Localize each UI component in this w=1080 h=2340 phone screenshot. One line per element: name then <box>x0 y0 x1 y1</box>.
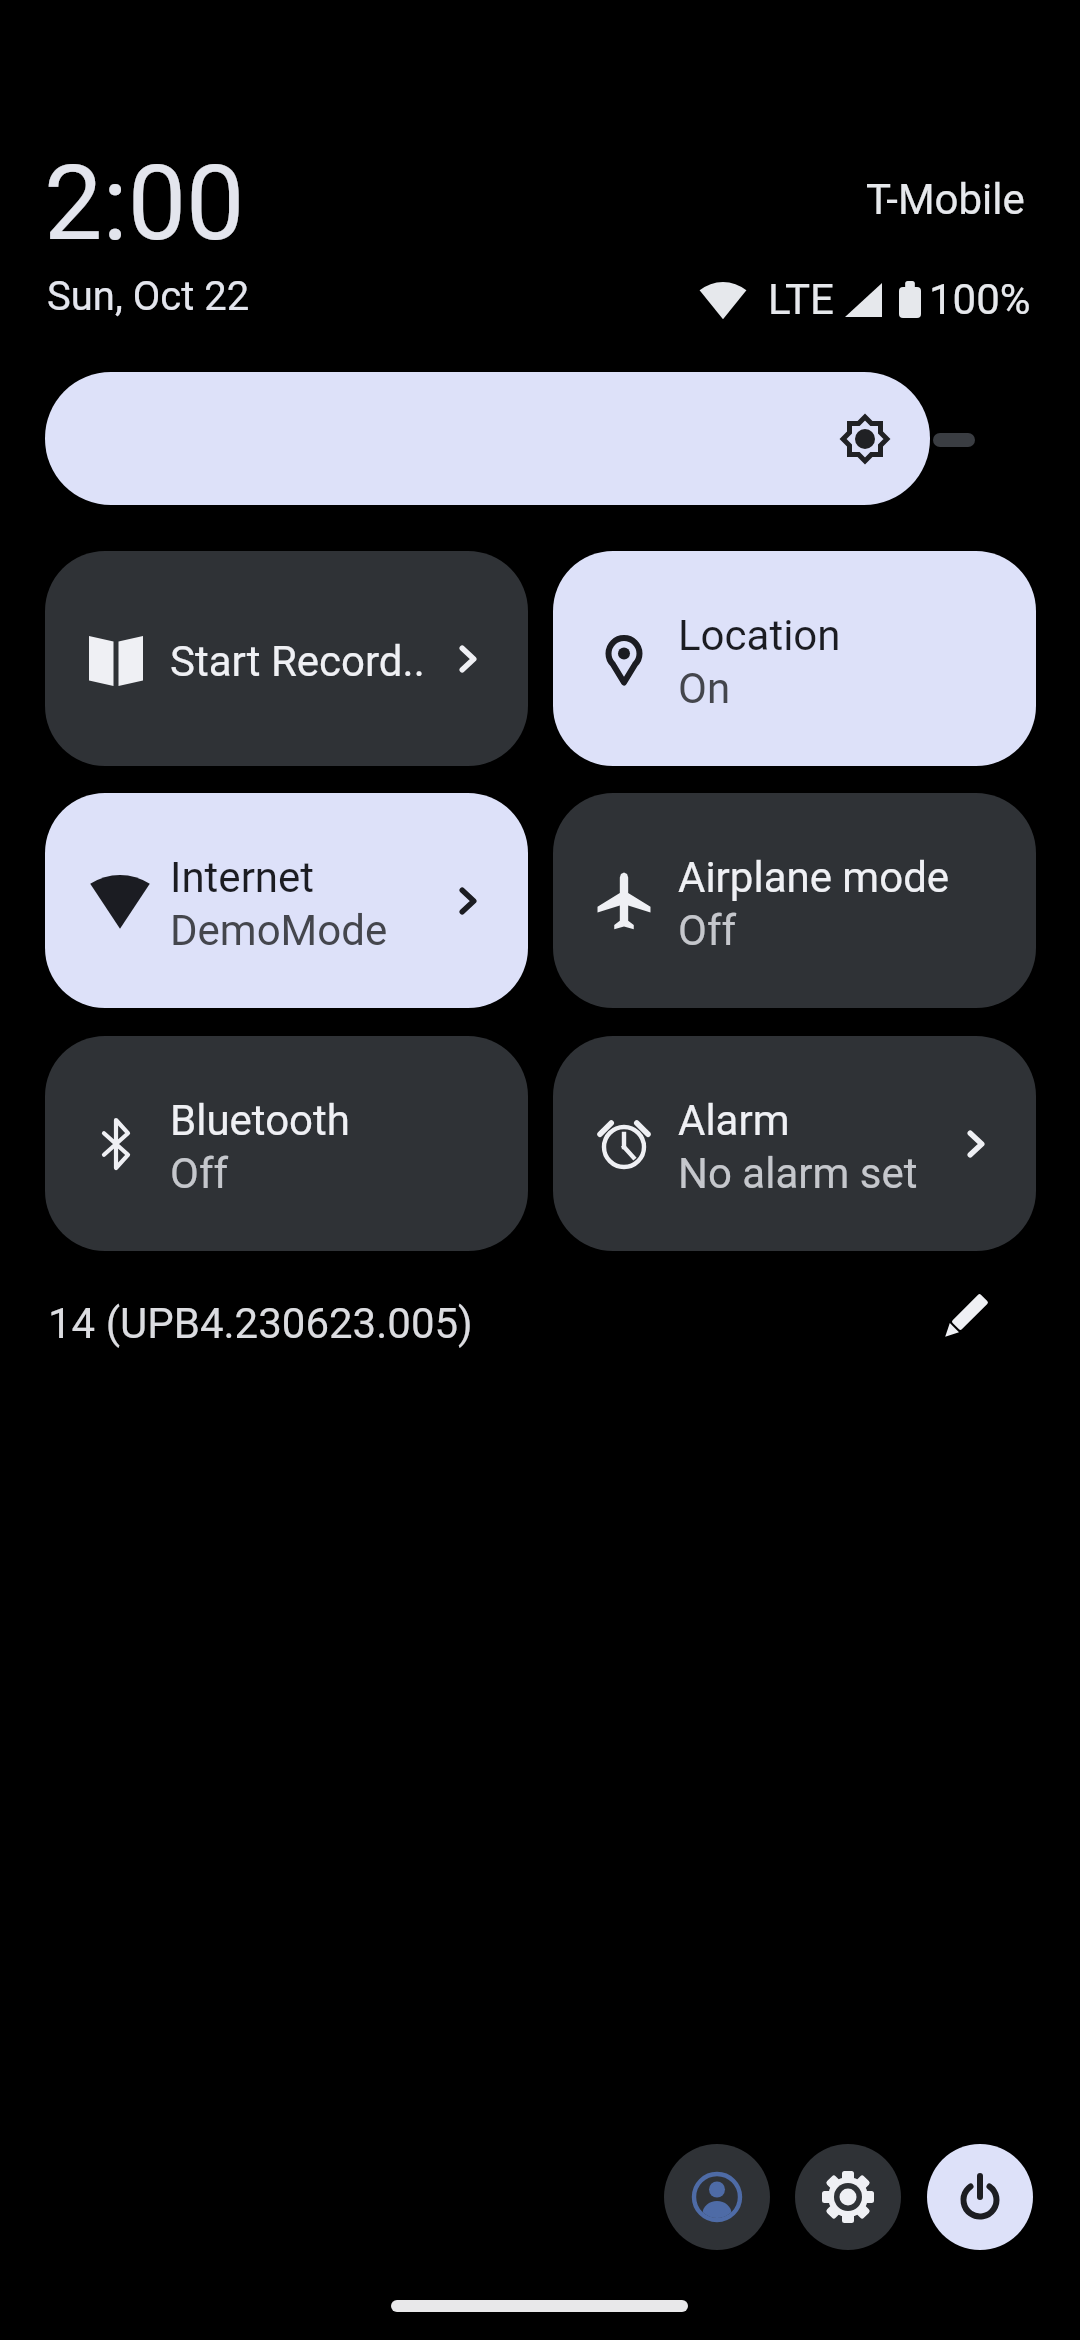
button[interactable] <box>940 1292 990 1342</box>
staticText: Off <box>170 1149 229 1198</box>
staticText: LTE <box>768 275 834 324</box>
button[interactable]: Start Record.. <box>45 551 528 766</box>
staticText: Off <box>678 906 737 955</box>
staticText: No alarm set <box>678 1149 918 1198</box>
staticText: 14 (UPB4.230623.005) <box>48 1299 473 1348</box>
staticText: 100% <box>929 275 1031 324</box>
staticText: Start Record.. <box>170 637 425 686</box>
staticText: Alarm <box>678 1096 790 1145</box>
staticText: Airplane mode <box>678 853 950 902</box>
button[interactable]: Bluetooth <box>45 1036 528 1251</box>
button[interactable]: Alarm <box>553 1036 1036 1251</box>
button[interactable]: Internet <box>45 793 528 1008</box>
staticText: Bluetooth <box>170 1096 350 1145</box>
staticText: T-Mobile <box>866 175 1025 224</box>
staticText: On <box>678 664 731 713</box>
button[interactable] <box>45 372 930 505</box>
button[interactable] <box>795 2144 901 2250</box>
staticText: DemoMode <box>170 906 388 955</box>
button[interactable] <box>664 2144 770 2250</box>
button[interactable] <box>927 2144 1033 2250</box>
staticText: Sun, Oct 22 <box>47 273 250 320</box>
staticText: Internet <box>170 853 315 902</box>
button[interactable]: Location <box>553 551 1036 766</box>
staticText: Location <box>678 611 841 660</box>
staticText: 2:00 <box>44 143 245 265</box>
button[interactable]: Airplane mode <box>553 793 1036 1008</box>
